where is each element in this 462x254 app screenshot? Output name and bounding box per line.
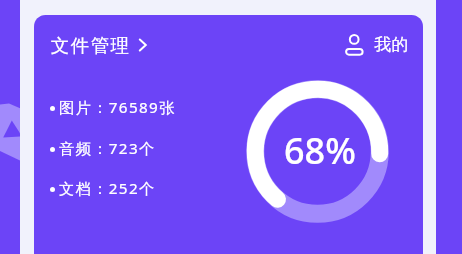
staticText: 图片：76589张 (59, 97, 176, 118)
button[interactable]: 图片：76589张 (44, 97, 224, 125)
staticText: 音频：723个 (59, 138, 156, 159)
staticText: 文档：252个 (59, 178, 156, 199)
button[interactable]: 文档：252个 (44, 178, 224, 206)
button[interactable]: 上一张卡片 (0, 0, 20, 254)
button[interactable]: 文件管理 (34, 15, 423, 254)
button[interactable]: 音频：723个 (44, 138, 224, 166)
button[interactable]: 文件管理 (46, 28, 152, 58)
staticText: 我的 (374, 34, 409, 55)
button[interactable]: 已使用 68% (247, 81, 389, 223)
staticText: 文件管理 (50, 34, 130, 57)
button[interactable]: 我的 (340, 28, 414, 60)
staticText: 68% (284, 126, 356, 175)
